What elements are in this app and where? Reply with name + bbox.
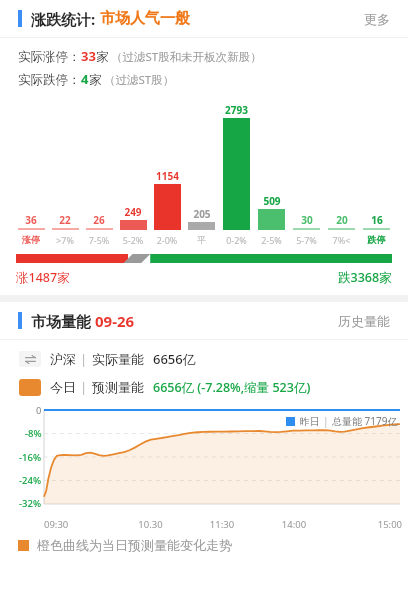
staticText: 家 [89, 72, 102, 88]
staticText: 实际跌停： [18, 72, 81, 88]
staticText: （过滤ST股和未开板次新股） [111, 49, 262, 65]
staticText: 跌停 [359, 234, 394, 245]
staticText: 市场量能 [31, 311, 95, 331]
staticText: 实际涨停： [18, 49, 81, 65]
staticText: 5-7% [289, 234, 324, 246]
staticText: （过滤ST股） [104, 72, 175, 88]
staticText: 36 [25, 213, 37, 227]
button[interactable]: 橙色曲线为当日预测量能变化走势 [18, 537, 408, 553]
staticText: 昨日 [300, 415, 320, 428]
staticText: 09-26 [95, 311, 135, 331]
staticText: 30 [301, 213, 313, 227]
staticText: | [323, 414, 329, 428]
staticText: 涨停 [14, 234, 48, 245]
staticText: 6656亿 [153, 350, 196, 368]
staticText: 沪深 [50, 351, 76, 367]
staticText: 11:30 [186, 518, 258, 531]
staticText: -32% [19, 497, 42, 510]
staticText: 4 [81, 70, 89, 88]
staticText: 0 [36, 404, 42, 417]
staticText: 家 [96, 49, 109, 65]
staticText: 今日 [50, 379, 76, 395]
staticText: 20 [336, 213, 348, 227]
staticText: 平 [184, 234, 219, 245]
staticText: 249 [124, 205, 142, 219]
staticText: 15:00 [330, 518, 402, 531]
staticText: 跌3368家 [338, 269, 392, 286]
staticText: 橙色曲线为当日预测量能变化走势 [37, 537, 232, 553]
staticText: >7% [48, 234, 82, 246]
staticText: 2-5% [254, 234, 289, 246]
staticText: 更多 [364, 11, 390, 27]
staticText: 历史量能 [338, 313, 390, 329]
staticText: | [80, 350, 88, 368]
staticText: 2793 [225, 103, 248, 117]
staticText: 16 [371, 213, 383, 227]
staticText: 涨跌统计: [31, 9, 100, 29]
button[interactable] [16, 254, 392, 263]
staticText: 10.30 [115, 518, 186, 531]
staticText: 市场人气一般 [100, 9, 190, 28]
button[interactable]: 市场量能 [0, 302, 408, 339]
staticText: 5-2% [116, 234, 150, 246]
button[interactable]: 涨跌统计: [0, 0, 408, 37]
staticText: 7-5% [82, 234, 116, 246]
button[interactable]: 历史量能 [334, 313, 394, 329]
staticText: 涨1487家 [16, 269, 70, 286]
staticText: 09:30 [44, 518, 115, 531]
staticText: -16% [19, 451, 42, 464]
staticText: 2-0% [150, 234, 184, 246]
staticText: 22 [59, 213, 71, 227]
staticText: 14:00 [258, 518, 330, 531]
button[interactable]: 今日 [19, 378, 408, 396]
staticText: 26 [93, 213, 105, 227]
staticText: 预测量能 [92, 379, 144, 395]
staticText: -8% [25, 427, 42, 440]
staticText: 实际量能 [92, 351, 144, 367]
staticText: 0-2% [219, 234, 254, 246]
button[interactable]: 更多 [360, 11, 394, 27]
staticText: | [80, 378, 88, 396]
other: 沪深切换 [19, 351, 41, 367]
button[interactable]: 沪深切换 [19, 350, 408, 368]
staticText: 总量能 7179亿 [332, 414, 398, 428]
staticText: 7%< [324, 234, 359, 246]
staticText: 205 [193, 207, 211, 221]
staticText: -24% [19, 474, 42, 487]
staticText: 509 [263, 194, 281, 208]
staticText: 33 [81, 47, 96, 65]
staticText: 1154 [156, 169, 179, 183]
staticText: 6656亿 (-7.28%,缩量 523亿) [153, 379, 311, 396]
